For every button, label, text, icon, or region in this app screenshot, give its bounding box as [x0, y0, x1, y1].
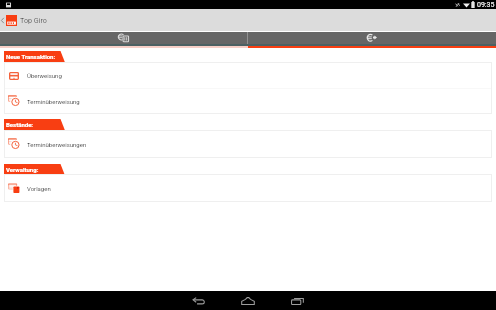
button[interactable]: Terminüberweisung	[5, 89, 491, 114]
staticText: Terminüberweisung	[27, 98, 80, 105]
staticText: Vorlagen	[27, 185, 51, 192]
staticText: Bestände:	[6, 121, 34, 128]
button[interactable]: Zuletzt verwendet	[285, 291, 311, 310]
staticText: Neue Transaktion:	[6, 53, 56, 60]
button[interactable]: Überweisung	[5, 63, 491, 88]
button[interactable]: Überweisung ausführen	[248, 32, 496, 44]
staticText: Überweisung	[27, 72, 62, 79]
staticText: Verwaltung:	[6, 166, 39, 173]
staticText: 09:35	[477, 1, 495, 9]
button[interactable]: Startbildschirm	[235, 291, 261, 310]
staticText: Terminüberweisungen	[27, 141, 87, 148]
button[interactable]: Zurück	[0, 9, 18, 31]
button[interactable]: Zurück	[186, 291, 212, 310]
staticText: Top Giro	[20, 16, 47, 24]
button[interactable]: Terminüberweisungen	[5, 131, 491, 157]
button[interactable]: Konto	[0, 32, 247, 44]
button[interactable]: Vorlagen	[5, 175, 491, 201]
